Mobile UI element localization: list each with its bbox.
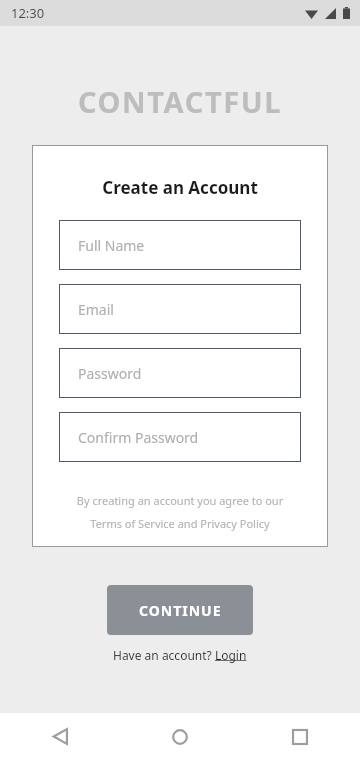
staticText: 12:30 xyxy=(11,4,45,22)
staticText: Confirm Password xyxy=(78,428,199,447)
staticText: Email xyxy=(78,300,114,319)
staticText: By creating an account you agree to our xyxy=(32,493,328,508)
staticText: CONTINUE xyxy=(139,601,222,620)
button[interactable]: Confirm Password xyxy=(59,412,301,462)
staticText: Create an Account xyxy=(32,176,328,199)
button[interactable]: Password xyxy=(59,348,301,398)
button[interactable]: Email xyxy=(59,284,301,334)
button[interactable]: Have an account? Login xyxy=(113,647,247,663)
staticText: Password xyxy=(78,364,142,383)
button[interactable]: Home xyxy=(120,713,240,760)
staticText: CONTACTFUL xyxy=(0,82,360,121)
button[interactable]: Recent apps xyxy=(240,713,360,760)
staticText: Full Name xyxy=(78,236,145,255)
button[interactable]: Back xyxy=(0,713,120,760)
button[interactable]: Terms of Service and Privacy Policy xyxy=(32,516,328,531)
button[interactable]: CONTINUE xyxy=(107,585,253,635)
button[interactable]: Full Name xyxy=(59,220,301,270)
